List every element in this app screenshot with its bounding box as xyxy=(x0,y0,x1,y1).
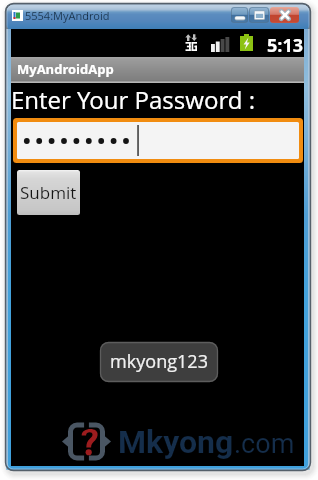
staticText: 5554:MyAndroid xyxy=(25,8,110,23)
button[interactable]: Submit xyxy=(17,170,80,215)
staticText: MyAndroidApp xyxy=(17,60,114,78)
button[interactable] xyxy=(13,118,303,163)
button[interactable]: mkyong123 xyxy=(100,342,218,382)
staticText: Mkyong xyxy=(118,423,234,461)
staticText: Submit xyxy=(20,181,77,204)
staticText: mkyong123 xyxy=(110,349,208,374)
button[interactable]: Close xyxy=(270,6,300,24)
staticText: Enter Your Password : xyxy=(11,83,256,116)
button[interactable]: Maximize xyxy=(249,6,270,24)
button[interactable]: MyAndroidApp xyxy=(11,57,304,83)
staticText: .com xyxy=(234,428,295,460)
staticText: 5:13 xyxy=(267,33,303,58)
button[interactable]: Minimize xyxy=(231,6,249,24)
